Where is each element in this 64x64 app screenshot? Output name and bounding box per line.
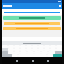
button[interactable] <box>3 16 61 20</box>
button[interactable] <box>2 10 62 13</box>
button[interactable]: Enter <box>53 54 62 57</box>
button[interactable]: Home <box>31 59 34 62</box>
button[interactable] <box>3 27 61 30</box>
button[interactable] <box>2 41 62 45</box>
button[interactable]: Back <box>15 59 18 62</box>
button[interactable]: More options <box>2 3 62 9</box>
button[interactable] <box>4 22 60 25</box>
button[interactable]: Recents <box>46 59 49 62</box>
